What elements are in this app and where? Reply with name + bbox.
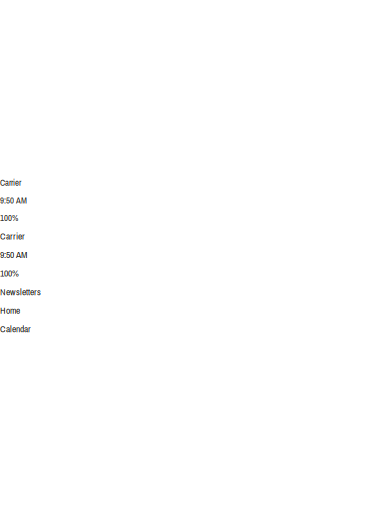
staticText: Home [0, 304, 20, 317]
staticText: Calendar [0, 323, 31, 335]
staticText: Newsletters [0, 285, 41, 298]
staticText: 100% [0, 267, 19, 279]
staticText: 9:50 AM [0, 248, 27, 261]
staticText: 9:50 AM [0, 194, 27, 206]
staticText: Carrier [0, 230, 25, 242]
staticText: 100% [0, 212, 18, 224]
staticText: Carrier [0, 177, 21, 188]
